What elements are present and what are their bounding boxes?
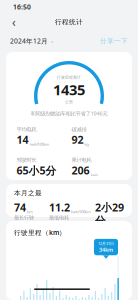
staticText: 1435 xyxy=(53,80,85,99)
staticText: 驾驶时长 xyxy=(16,157,36,163)
staticText: 65小5分 xyxy=(16,163,56,178)
staticText: 74 xyxy=(14,200,26,214)
staticText: 累计电耗 xyxy=(71,157,91,163)
staticText: kwh/100km xyxy=(29,141,49,147)
staticText: 最低电耗 xyxy=(49,214,69,221)
staticText: kwh xyxy=(90,172,97,177)
button[interactable]: 分享一下 xyxy=(100,37,128,45)
staticText: 碳减排 xyxy=(71,126,86,133)
staticText: 92 xyxy=(71,133,83,147)
staticText: 本月之最 xyxy=(14,189,42,197)
staticText: 平均电耗 xyxy=(16,126,36,133)
staticText: 2024年12月 xyxy=(10,37,48,45)
button[interactable]: Back xyxy=(7,15,21,29)
staticText: kwh/100km xyxy=(71,209,91,214)
staticText: 12月31日 xyxy=(98,241,114,246)
button[interactable]: 2024年12月 xyxy=(10,37,54,45)
staticText: 和同级别燃油车相比节省了1046元 xyxy=(30,110,107,117)
staticText: 11.2 xyxy=(49,200,70,214)
staticText: 行程统计 xyxy=(55,18,83,26)
staticText: 206 xyxy=(71,163,89,178)
staticText: ‹ xyxy=(12,14,16,30)
staticText: 16:50 xyxy=(13,3,31,11)
staticText: 行驶里程（km） xyxy=(14,228,66,237)
staticText: 34km xyxy=(99,246,113,253)
staticText: 公里 xyxy=(65,99,73,104)
staticText: km xyxy=(27,209,33,214)
staticText: 分享一下 xyxy=(100,37,128,45)
staticText: 行驶里程累计 xyxy=(57,75,81,80)
staticText: 最长行驶 xyxy=(14,214,34,221)
staticText: 14 xyxy=(16,133,28,147)
staticText: 2小29分 xyxy=(95,200,124,227)
staticText: ⌄ xyxy=(50,38,54,44)
staticText: kg xyxy=(84,141,88,147)
